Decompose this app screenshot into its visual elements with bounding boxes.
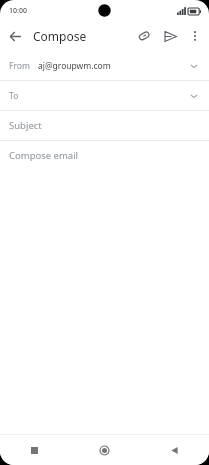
staticText: 10:00: [9, 6, 27, 16]
button[interactable]: From: [0, 51, 209, 80]
staticText: To: [9, 90, 19, 102]
button[interactable]: Recent apps: [0, 435, 69, 465]
staticText: Subject: [9, 119, 42, 132]
button[interactable]: Compose email: [0, 141, 209, 170]
staticText: aj@groupwm.com: [38, 60, 111, 72]
button[interactable]: Back: [139, 435, 209, 465]
button[interactable]: To: [0, 81, 209, 110]
button[interactable]: Subject: [0, 111, 209, 140]
button[interactable]: Attach file: [131, 23, 157, 49]
button[interactable]: Send: [157, 23, 183, 49]
button[interactable]: Home: [69, 435, 139, 465]
staticText: Compose email: [9, 149, 79, 162]
button[interactable]: Expand: [186, 88, 202, 104]
staticText: From: [9, 60, 30, 72]
button[interactable]: Back: [0, 21, 30, 51]
button[interactable]: Expand: [186, 58, 202, 74]
staticText: Compose: [33, 28, 87, 44]
button[interactable]: More options: [183, 24, 207, 48]
